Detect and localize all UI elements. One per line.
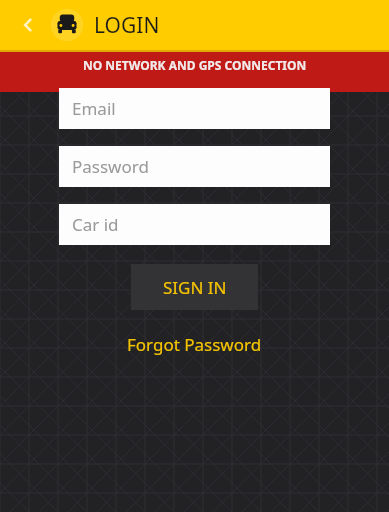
button[interactable]: SIGN IN [131,264,258,310]
staticText: NO NETWORK AND GPS CONNECTION [83,57,307,73]
staticText: Password [72,155,149,178]
button[interactable]: Car id [59,204,330,245]
staticText: Email [72,97,116,120]
button[interactable]: Email [59,88,330,129]
staticText: Forgot Password [127,333,262,356]
staticText: Car id [72,213,119,236]
button[interactable]: Password [59,146,330,187]
staticText: LOGIN [94,11,160,40]
button[interactable]: Back [12,9,44,41]
staticText: SIGN IN [163,276,227,299]
button[interactable]: Forgot Password [119,329,270,360]
